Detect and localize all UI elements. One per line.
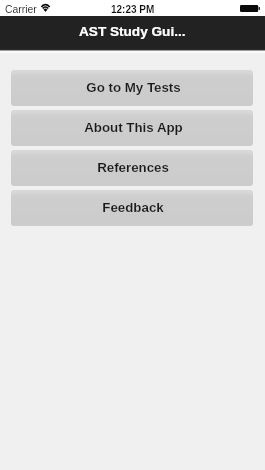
other: Battery full [240, 5, 260, 12]
staticText: References [97, 160, 169, 175]
staticText: Go to My Tests [86, 80, 181, 95]
staticText: AST Study Gui... [79, 24, 186, 39]
staticText: Carrier [5, 4, 37, 16]
button[interactable]: Feedback [11, 190, 253, 226]
staticText: About This App [84, 120, 183, 135]
staticText: 12:23 PM [111, 4, 155, 15]
staticText: Feedback [102, 200, 164, 215]
button[interactable]: Go to My Tests [11, 70, 253, 106]
button[interactable]: About This App [11, 110, 253, 146]
other: Wi-Fi signal [40, 4, 51, 12]
button[interactable]: References [11, 150, 253, 186]
